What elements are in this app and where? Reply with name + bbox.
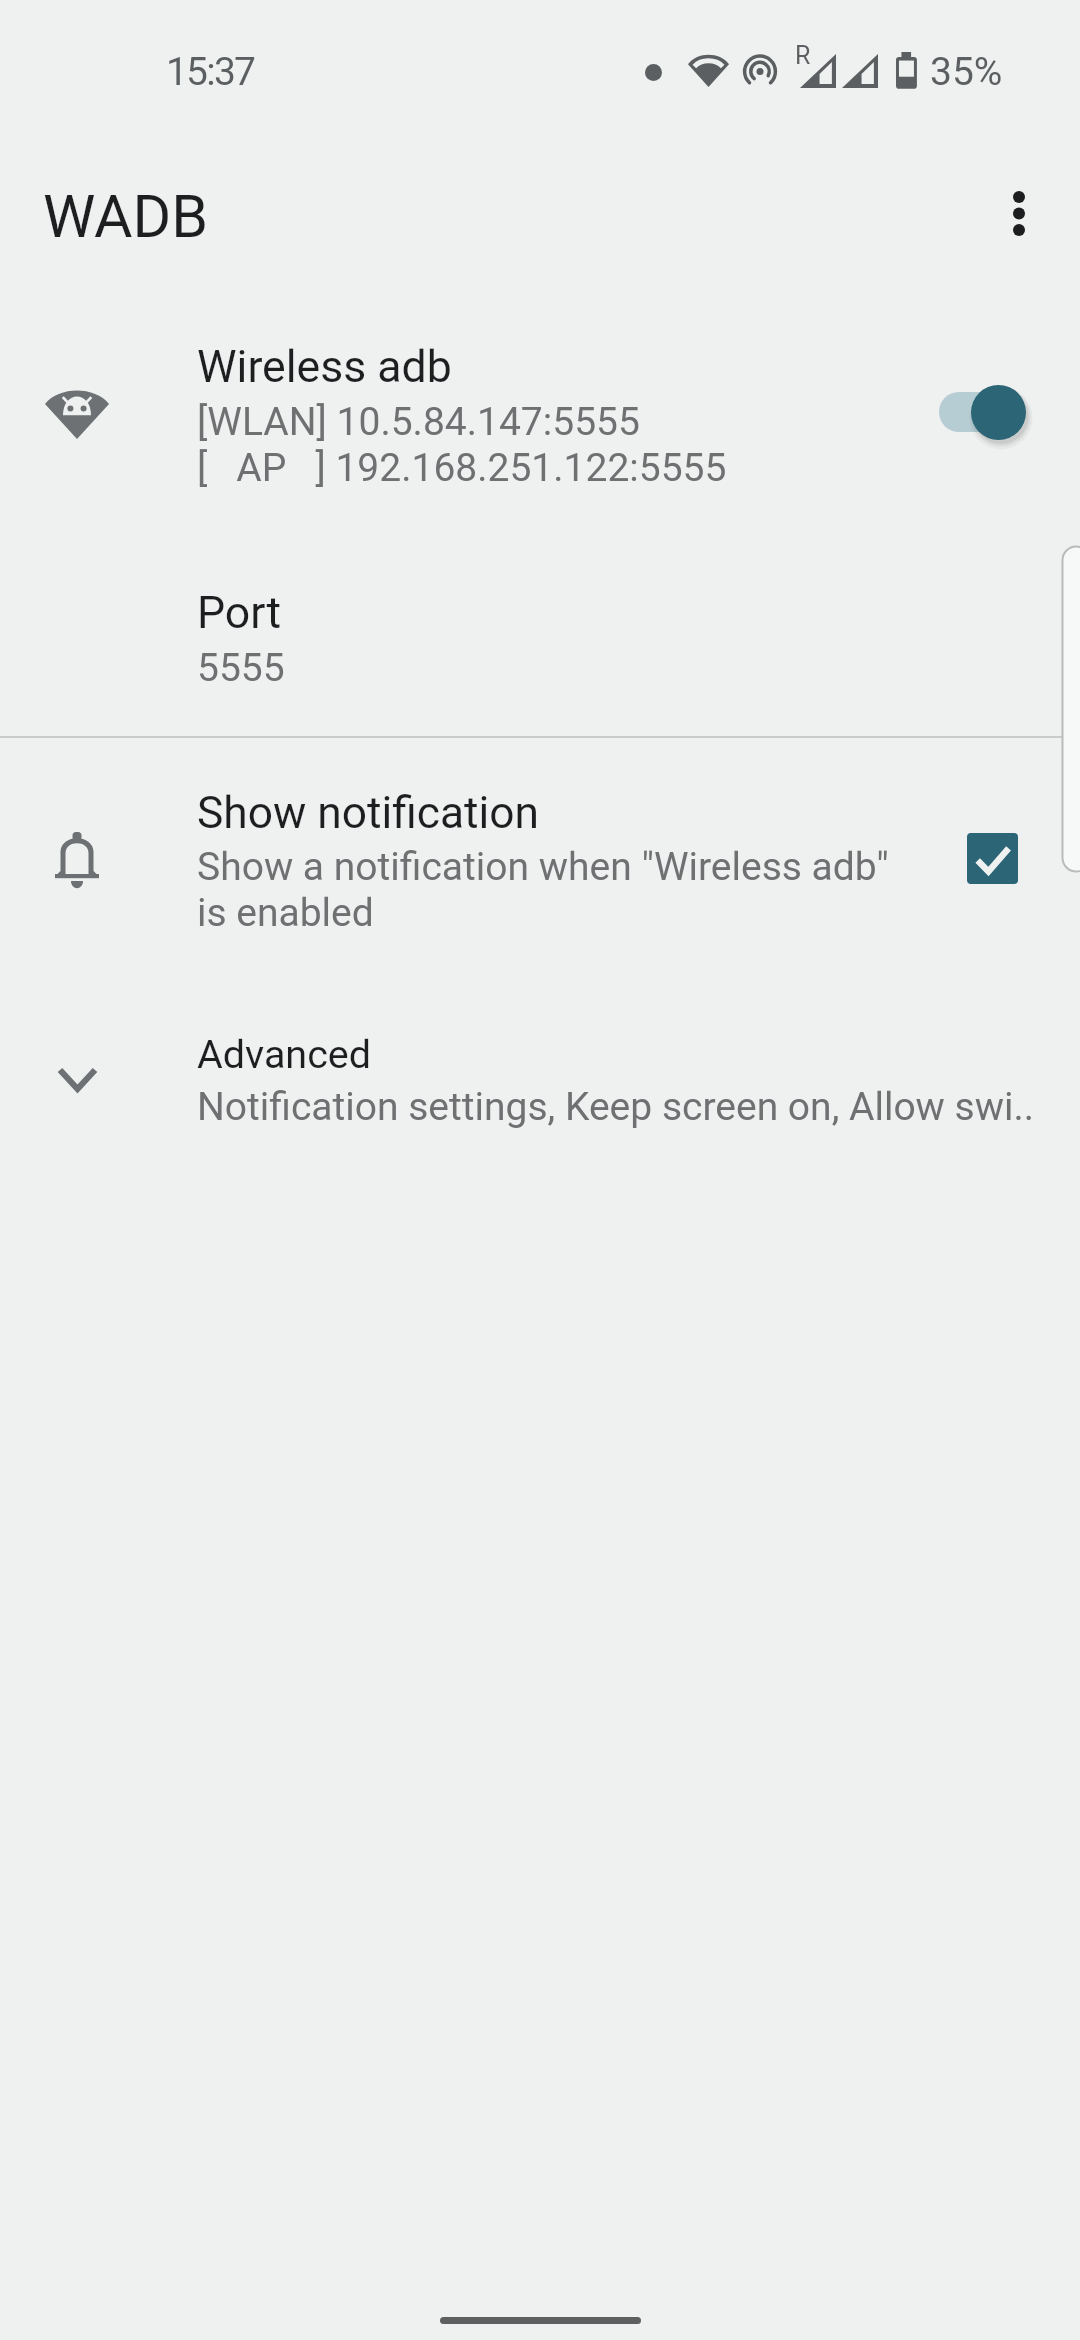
button[interactable]: Show notification checkbox, checked [944, 810, 1040, 906]
button[interactable]: Port [0, 545, 1080, 730]
staticText: 15:37 [166, 49, 255, 95]
staticText: Port [197, 587, 282, 639]
staticText: 35% [930, 49, 1003, 95]
staticText: Wireless adb [197, 341, 452, 393]
staticText: Show notification [197, 787, 540, 839]
staticText: R [795, 41, 811, 70]
button[interactable]: Wireless adb [0, 300, 1080, 522]
staticText: [WLAN] 10.5.84.147:5555 [197, 399, 640, 445]
button[interactable]: Show notification [0, 745, 1080, 991]
staticText: [ AP ] 192.168.251.122:5555 [197, 445, 727, 491]
button[interactable]: Advanced [0, 992, 1080, 1167]
staticText: Show a notification when "Wireless adb" [197, 844, 889, 890]
button[interactable]: Wireless adb switch, on [925, 375, 1040, 449]
staticText: WADB [43, 182, 209, 251]
staticText: Advanced [197, 1031, 372, 1077]
button[interactable]: More options [974, 168, 1064, 258]
staticText: is enabled [197, 890, 374, 936]
staticText: 5555 [197, 645, 285, 691]
staticText: Notification settings, Keep screen on, A… [197, 1084, 1035, 1130]
